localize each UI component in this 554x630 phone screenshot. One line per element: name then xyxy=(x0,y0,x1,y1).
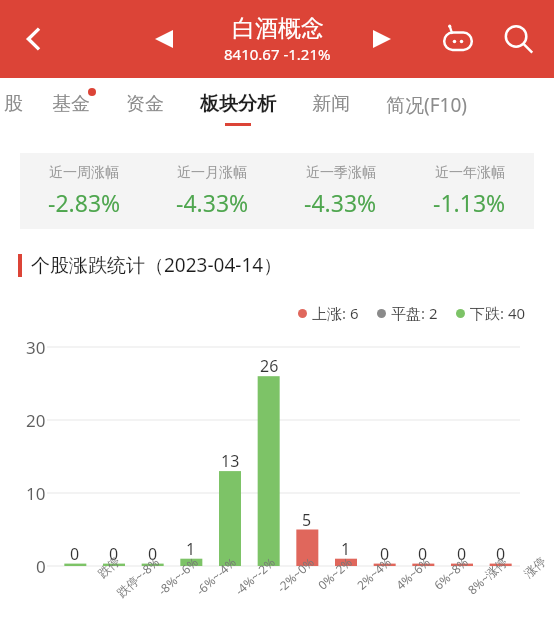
staticText: 0 xyxy=(70,543,80,565)
staticText: 0 xyxy=(496,543,506,565)
staticText: 基金 xyxy=(52,92,90,116)
button[interactable]: 板块分析 xyxy=(200,78,276,126)
staticText: 8%~涨停 xyxy=(464,553,510,597)
staticText: -4%~-2% xyxy=(231,553,278,598)
button[interactable]: 近一季涨幅 xyxy=(276,153,405,229)
staticText: -8%~-6% xyxy=(154,553,201,598)
staticText: 股 xyxy=(4,92,23,116)
staticText: 近一季涨幅 xyxy=(306,164,376,182)
staticText: 20 xyxy=(26,409,46,432)
staticText: 平盘: 2 xyxy=(391,303,438,323)
button[interactable]: 基金 xyxy=(52,78,90,126)
staticText: 简况(F10) xyxy=(386,92,467,118)
button[interactable]: 平盘: 2 xyxy=(377,303,438,323)
button[interactable]: 上涨: 6 xyxy=(298,303,359,323)
button[interactable]: Next sector xyxy=(360,17,404,61)
staticText: 6%~8% xyxy=(430,553,471,593)
staticText: 30 xyxy=(26,336,46,359)
button[interactable]: 简况(F10) xyxy=(386,78,467,128)
button[interactable]: 资金 xyxy=(126,78,164,126)
staticText: 下跌: 40 xyxy=(470,303,526,323)
staticText: 1 xyxy=(186,538,196,560)
staticText: 个股涨跌统计（2023-04-14） xyxy=(31,252,283,278)
button[interactable]: Search xyxy=(494,15,542,63)
staticText: 26 xyxy=(260,355,279,377)
button[interactable]: 股 xyxy=(0,78,26,126)
button[interactable]: 近一周涨幅 xyxy=(20,153,148,229)
staticText: 涨停 xyxy=(521,553,549,581)
staticText: 跌停 xyxy=(95,553,123,581)
staticText: -2%~0% xyxy=(273,553,317,595)
staticText: 0 xyxy=(148,543,158,565)
staticText: 8410.67 -1.21% xyxy=(224,44,331,64)
staticText: 0 xyxy=(457,543,467,565)
staticText: -2.83% xyxy=(48,187,121,218)
staticText: 近一年涨幅 xyxy=(435,164,505,182)
button[interactable]: Back xyxy=(8,13,60,65)
button[interactable]: 下跌: 40 xyxy=(456,303,526,323)
staticText: 1 xyxy=(341,538,351,560)
staticText: 板块分析 xyxy=(200,92,276,116)
button[interactable]: 近一月涨幅 xyxy=(148,153,276,229)
staticText: 跌停~-8% xyxy=(113,553,162,600)
staticText: 0%~2% xyxy=(314,553,355,593)
staticText: 10 xyxy=(26,482,46,505)
staticText: 白酒概念 xyxy=(232,14,324,43)
staticText: 4%~6% xyxy=(392,553,433,593)
staticText: -6%~-4% xyxy=(192,553,239,598)
staticText: -4.33% xyxy=(304,187,377,218)
staticText: 新闻 xyxy=(312,92,350,116)
staticText: 资金 xyxy=(126,92,164,116)
staticText: 0 xyxy=(109,543,119,565)
button[interactable]: Previous sector xyxy=(142,17,186,61)
staticText: 5 xyxy=(302,509,312,531)
staticText: 上涨: 6 xyxy=(312,303,359,323)
staticText: -4.33% xyxy=(176,187,249,218)
button[interactable]: Assistant robot xyxy=(434,15,482,63)
staticText: 13 xyxy=(221,450,240,472)
staticText: 近一周涨幅 xyxy=(49,164,119,182)
button[interactable]: 近一年涨幅 xyxy=(405,153,534,229)
staticText: 0 xyxy=(418,543,428,565)
button[interactable]: 新闻 xyxy=(312,78,350,126)
staticText: 2%~4% xyxy=(353,553,394,593)
staticText: 0 xyxy=(36,555,46,578)
staticText: -1.13% xyxy=(433,187,506,218)
staticText: 近一月涨幅 xyxy=(177,164,247,182)
staticText: 0 xyxy=(380,543,390,565)
